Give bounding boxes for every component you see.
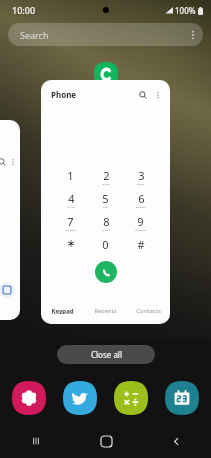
button[interactable]: Phone: [41, 80, 170, 324]
staticText: 10:00: [12, 4, 36, 16]
staticText: Search: [20, 29, 49, 41]
button[interactable]: 9: [123, 214, 158, 231]
button[interactable]: More options: [183, 25, 203, 45]
button[interactable]: Home: [71, 429, 141, 453]
staticText: JKL: [103, 206, 109, 208]
button[interactable]: Calendar: [165, 381, 199, 415]
staticText: PQRS: [65, 229, 76, 231]
staticText: Recents: [94, 307, 117, 315]
button[interactable]: 1: [53, 168, 88, 185]
button[interactable]: 6: [123, 191, 158, 208]
button[interactable]: Gallery: [12, 381, 46, 415]
staticText: 6: [138, 191, 145, 206]
staticText: 3: [138, 168, 145, 183]
staticText: 8: [103, 214, 110, 229]
staticText: WXYZ: [135, 229, 146, 231]
button[interactable]: 8: [88, 214, 123, 231]
button[interactable]: 2: [88, 168, 123, 185]
staticText: 100%: [175, 5, 196, 16]
button[interactable]: Recents: [84, 304, 127, 318]
staticText: 0: [102, 237, 109, 252]
button[interactable]: 4: [53, 191, 88, 208]
button[interactable]: Back: [141, 429, 211, 453]
staticText: 4: [68, 191, 75, 206]
staticText: GHI: [67, 206, 75, 208]
button[interactable]: Phone app icon: [94, 62, 118, 86]
button[interactable]: Call: [95, 261, 117, 283]
staticText: 7: [67, 214, 74, 229]
button[interactable]: 3: [123, 168, 158, 185]
button[interactable]: Twitter: [63, 381, 97, 415]
button[interactable]: Search: [8, 23, 203, 46]
staticText: Contacts: [136, 307, 161, 315]
staticText: Close all: [91, 349, 122, 360]
staticText: MNO: [136, 206, 146, 208]
staticText: ∗: [66, 237, 76, 250]
button[interactable]: [0, 120, 20, 320]
button[interactable]: ∗: [53, 237, 88, 254]
staticText: 2: [103, 168, 110, 183]
button[interactable]: 7: [53, 214, 88, 231]
staticText: 9: [137, 214, 144, 229]
button[interactable]: Calculator: [114, 381, 148, 415]
button[interactable]: Search: [136, 88, 149, 101]
staticText: DEF: [137, 183, 145, 185]
button[interactable]: #: [123, 237, 158, 254]
staticText: #: [137, 237, 145, 252]
button[interactable]: Contacts: [127, 304, 170, 318]
staticText: Phone: [51, 89, 77, 100]
staticText: 1: [67, 168, 74, 183]
staticText: TUV: [102, 229, 110, 231]
staticText: 5: [102, 191, 109, 206]
staticText: Keypad: [51, 307, 74, 315]
button[interactable]: More options: [151, 88, 164, 101]
button[interactable]: 5: [88, 191, 123, 208]
button[interactable]: 0: [88, 237, 123, 254]
button[interactable]: Recents: [0, 429, 71, 453]
button[interactable]: Close all: [57, 345, 155, 364]
staticText: ABC: [102, 183, 110, 185]
button[interactable]: Keypad: [41, 304, 84, 318]
